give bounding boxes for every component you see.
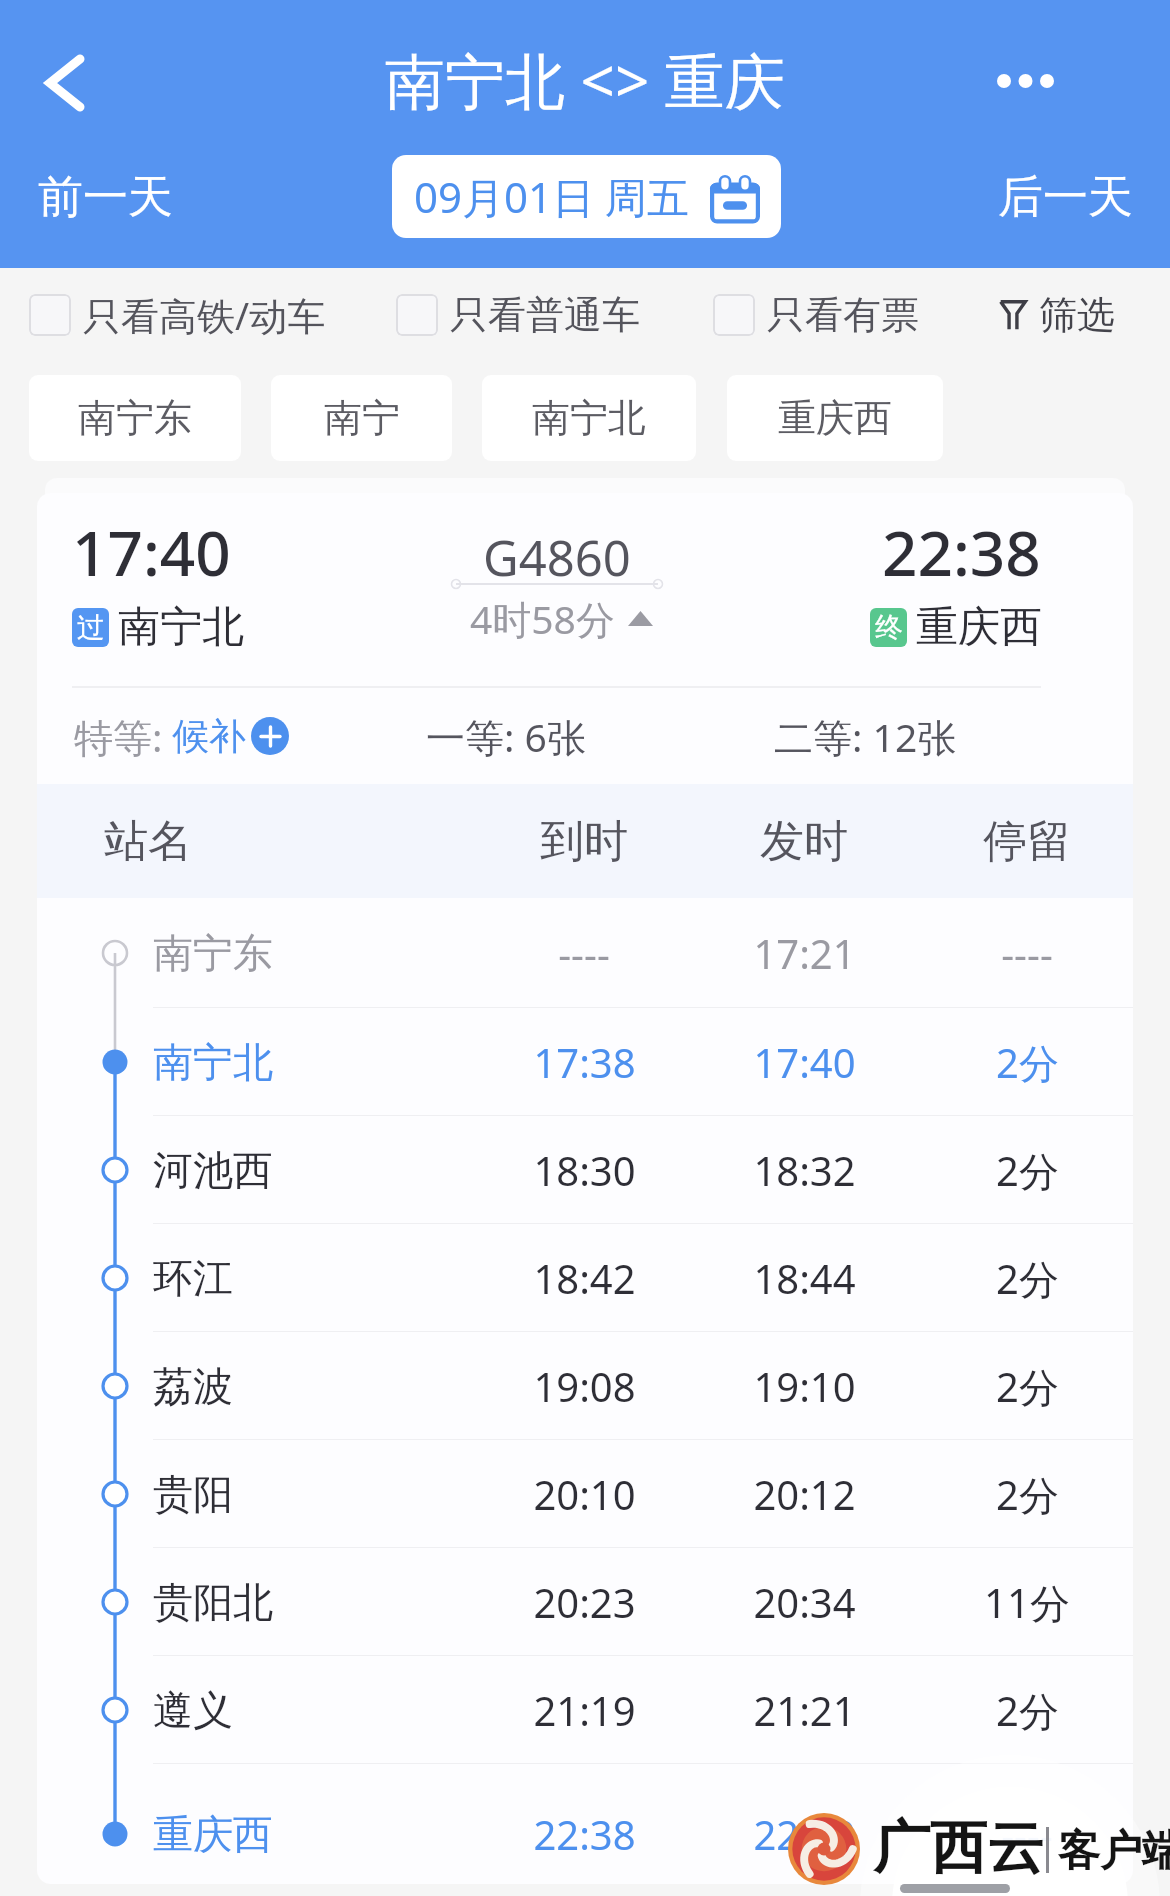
staticText: 遵义 xyxy=(153,1685,233,1735)
button[interactable]: 荔波 xyxy=(37,1332,1133,1440)
staticText: 贵阳北 xyxy=(153,1577,273,1627)
button[interactable]: 遵义 xyxy=(37,1656,1133,1764)
button[interactable]: 南宁 xyxy=(271,375,452,461)
button[interactable]: 只看普通车 xyxy=(392,268,640,362)
staticText: 终 xyxy=(875,610,903,645)
staticText: 2分 xyxy=(996,1251,1059,1306)
staticText: 后一天 xyxy=(998,169,1133,226)
staticText: 19:10 xyxy=(753,1359,856,1413)
staticText: 20:23 xyxy=(533,1575,636,1629)
staticText: ---- xyxy=(1001,1807,1053,1861)
staticText: 贵阳 xyxy=(153,1469,233,1519)
button[interactable]: 特等: xyxy=(74,688,289,784)
staticText: 18:42 xyxy=(533,1251,636,1305)
staticText: 筛选 xyxy=(1039,291,1115,339)
staticText: 只看普通车 xyxy=(450,291,640,339)
staticText: 南宁北 <> 重庆 xyxy=(385,39,785,121)
staticText: G4860 xyxy=(483,524,631,591)
button[interactable]: 重庆西 xyxy=(727,375,943,461)
staticText: 2分 xyxy=(996,1683,1059,1738)
staticText: 2分 xyxy=(996,1467,1059,1522)
staticText: 21:21 xyxy=(753,1683,856,1737)
staticText: 11分 xyxy=(984,1575,1070,1630)
staticText: 候补 xyxy=(172,713,246,760)
button[interactable]: 只看有票 xyxy=(709,268,919,362)
staticText: 广西云 xyxy=(873,1812,1044,1884)
staticText: 前一天 xyxy=(38,169,173,226)
staticText: 22:38 xyxy=(533,1807,636,1861)
staticText: 2分 xyxy=(996,1143,1059,1198)
staticText: 南宁北 xyxy=(153,1037,273,1087)
button[interactable]: 筛选 xyxy=(985,268,1129,362)
button[interactable]: 南宁东 xyxy=(29,375,241,461)
staticText: 南宁北 xyxy=(118,601,244,654)
staticText: 20:10 xyxy=(533,1467,636,1521)
staticText: 客户端 xyxy=(1058,1825,1170,1878)
staticText: 南宁东 xyxy=(153,928,273,978)
staticText: 17:38 xyxy=(533,1035,636,1089)
staticText: 17:40 xyxy=(72,510,231,594)
staticText: 22:38 xyxy=(882,510,1041,594)
staticText: 二等: 12张 xyxy=(774,710,957,763)
staticText: ---- xyxy=(558,926,610,980)
staticText: 重庆西 xyxy=(778,394,892,442)
button[interactable]: 重庆西 xyxy=(37,1764,1133,1884)
staticText: 南宁北 xyxy=(532,394,646,442)
button[interactable]: 河池西 xyxy=(37,1116,1133,1224)
button[interactable]: 后一天 xyxy=(998,169,1133,226)
button[interactable]: 只看高铁/动车 xyxy=(25,268,326,362)
button[interactable]: 环江 xyxy=(37,1224,1133,1332)
staticText: 20:12 xyxy=(753,1467,856,1521)
staticText: 18:44 xyxy=(753,1251,856,1305)
staticText: 20:34 xyxy=(753,1575,856,1629)
button[interactable]: 贵阳 xyxy=(37,1440,1133,1548)
staticText: 4时58分 xyxy=(470,592,615,645)
staticText: ---- xyxy=(1001,926,1053,980)
staticText: 只看有票 xyxy=(767,291,919,339)
staticText: 停留 xyxy=(983,814,1071,869)
staticText: 一等: 6张 xyxy=(426,710,586,763)
staticText: 21:19 xyxy=(533,1683,636,1737)
staticText: 特等: xyxy=(74,710,163,763)
staticText: 到时 xyxy=(540,814,628,869)
button[interactable]: 前一天 xyxy=(38,169,173,226)
staticText: 2分 xyxy=(996,1359,1059,1414)
button[interactable]: 南宁北 xyxy=(37,1008,1133,1116)
staticText: 09月01日 周五 xyxy=(414,168,690,225)
staticText: 18:32 xyxy=(753,1143,856,1197)
staticText: 站名 xyxy=(104,814,192,869)
staticText: 17:21 xyxy=(753,926,856,980)
staticText: 荔波 xyxy=(153,1361,233,1411)
button[interactable]: More options xyxy=(955,26,1095,136)
staticText: 过 xyxy=(77,610,105,645)
staticText: 重庆西 xyxy=(153,1809,273,1859)
staticText: 22:40 xyxy=(753,1807,856,1861)
staticText: 只看高铁/动车 xyxy=(83,289,326,341)
staticText: 发时 xyxy=(760,814,848,869)
button[interactable]: 南宁东 xyxy=(37,898,1133,1008)
button[interactable]: 09月01日 周五 xyxy=(392,155,781,238)
button[interactable]: 南宁北 xyxy=(482,375,696,461)
button[interactable]: Back xyxy=(10,28,120,138)
staticText: 河池西 xyxy=(153,1145,273,1195)
staticText: 18:30 xyxy=(533,1143,636,1197)
staticText: 2分 xyxy=(996,1035,1059,1090)
staticText: 环江 xyxy=(153,1253,233,1303)
staticText: 重庆西 xyxy=(916,601,1042,654)
button[interactable]: 贵阳北 xyxy=(37,1548,1133,1656)
staticText: 南宁东 xyxy=(78,394,192,442)
staticText: 19:08 xyxy=(533,1359,636,1413)
staticText: 17:40 xyxy=(753,1035,856,1089)
staticText: 南宁 xyxy=(324,394,400,442)
